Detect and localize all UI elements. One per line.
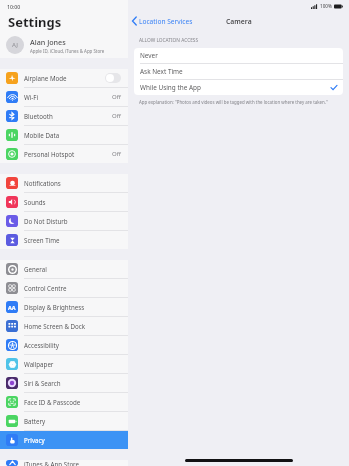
button[interactable]: Location Services [128,12,197,30]
staticText: ALLOW LOCATION ACCESS [139,37,199,44]
staticText: Personal Hotspot [24,150,112,158]
other: Selected [331,85,337,90]
staticText: Bluetooth [24,112,112,120]
staticText: Display & Brightness [24,303,121,311]
staticText: Notifications [24,179,121,187]
staticText: 10:00 [7,3,21,10]
button[interactable]: General [0,260,128,278]
staticText: Location Services [139,17,193,26]
staticText: Off [112,150,121,158]
button[interactable]: Screen Time [0,231,128,249]
staticText: Airplane Mode [24,74,105,82]
staticText: Ask Next Time [140,67,337,76]
button[interactable]: AJ [0,32,128,58]
staticText: AA [8,304,16,311]
button[interactable]: Personal Hotspot [0,145,128,163]
button[interactable]: Face ID & Passcode [0,393,128,411]
staticText: Siri & Search [24,379,121,387]
button[interactable]: Accessibility [0,336,128,354]
staticText: AJ [12,41,18,49]
staticText: General [24,265,121,273]
staticText: Wallpaper [24,360,121,368]
staticText: App explanation: "Photos and videos will… [139,99,328,105]
button[interactable]: Privacy [0,431,128,449]
button[interactable]: Notifications [0,174,128,192]
staticText: Wi-Fi [24,93,112,101]
staticText: While Using the App [140,83,331,92]
button[interactable]: Control Centre [0,279,128,297]
staticText: Screen Time [24,236,121,244]
button[interactable]: Wi-Fi [0,88,128,106]
staticText: Privacy [24,436,121,444]
staticText: Sounds [24,198,121,206]
button[interactable]: AA [0,298,128,316]
staticText: Accessibility [24,341,121,349]
staticText: Apple ID, iCloud, iTunes & App Store [30,48,105,54]
staticText: Face ID & Passcode [24,398,121,406]
button[interactable]: Siri & Search [0,374,128,392]
staticText: Do Not Disturb [24,217,121,225]
button[interactable]: Mobile Data [0,126,128,144]
staticText: Battery [24,417,121,425]
staticText: Home Screen & Dock [24,322,121,330]
button[interactable]: Battery [0,412,128,430]
button[interactable]: Wallpaper [0,355,128,373]
staticText: Camera [226,17,252,26]
button[interactable]: Airplane Mode [0,69,128,87]
staticText: Off [112,112,121,120]
staticText: Control Centre [24,284,121,292]
button[interactable]: Bluetooth [0,107,128,125]
staticText: Mobile Data [24,131,121,139]
staticText: iTunes & App Store [24,460,121,466]
staticText: 100% [320,3,332,9]
button[interactable]: Do Not Disturb [0,212,128,230]
button[interactable]: Ask Next Time [134,64,343,79]
button[interactable]: iTunes & App Store [0,460,128,466]
staticText: Never [140,51,337,60]
staticText: Off [112,93,121,101]
button[interactable]: Home Screen & Dock [0,317,128,335]
staticText: Settings [8,13,62,31]
button[interactable]: While Using the App [134,80,343,95]
button[interactable]: Never [134,48,343,63]
staticText: Alan Jones [30,37,66,47]
button[interactable]: Sounds [0,193,128,211]
